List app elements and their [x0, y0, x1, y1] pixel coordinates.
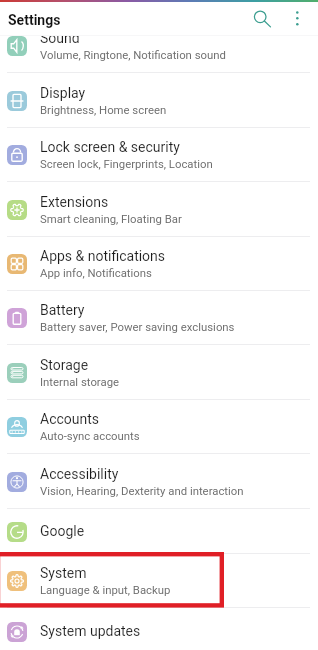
button[interactable]: Google: [0, 509, 318, 554]
button[interactable]: Accessibility: [0, 455, 318, 509]
staticText: System: [40, 565, 87, 581]
staticText: Settings: [8, 12, 61, 28]
staticText: App info, Notifications: [40, 266, 152, 279]
button[interactable]: More options: [286, 5, 310, 29]
button[interactable]: Battery: [0, 291, 318, 345]
staticText: Smart cleaning, Floating Bar: [40, 212, 182, 225]
staticText: Apps & notifications: [40, 248, 166, 264]
button[interactable]: Extensions: [0, 183, 318, 237]
staticText: Accessibility: [40, 466, 119, 482]
staticText: System updates: [40, 623, 141, 639]
button[interactable]: Storage: [0, 346, 318, 400]
button[interactable]: Apps & notifications: [0, 237, 318, 291]
staticText: Extensions: [40, 194, 109, 210]
staticText: Google: [40, 523, 85, 539]
staticText: Internal storage: [40, 375, 120, 388]
button[interactable]: Search: [248, 5, 272, 29]
staticText: Battery saver, Power saving exclusions: [40, 320, 235, 333]
staticText: Lock screen & security: [40, 139, 180, 155]
staticText: Display: [40, 85, 86, 101]
staticText: Accounts: [40, 411, 100, 427]
staticText: Volume, Ringtone, Notification sound: [40, 48, 226, 61]
staticText: Sound: [40, 30, 80, 46]
button[interactable]: System updates: [0, 609, 318, 650]
button[interactable]: System: [0, 554, 318, 608]
staticText: Language & input, Backup: [40, 583, 171, 596]
button[interactable]: Accounts: [0, 400, 318, 454]
button[interactable]: Display: [0, 74, 318, 128]
button[interactable]: Sound: [0, 19, 318, 73]
staticText: Storage: [40, 357, 89, 373]
staticText: Vision, Hearing, Dexterity and interacti…: [40, 484, 244, 497]
staticText: Screen lock, Fingerprints, Location: [40, 157, 213, 170]
staticText: Brightness, Home screen: [40, 103, 167, 116]
staticText: Auto-sync accounts: [40, 429, 140, 442]
staticText: Battery: [40, 302, 85, 318]
button[interactable]: Lock screen & security: [0, 128, 318, 182]
